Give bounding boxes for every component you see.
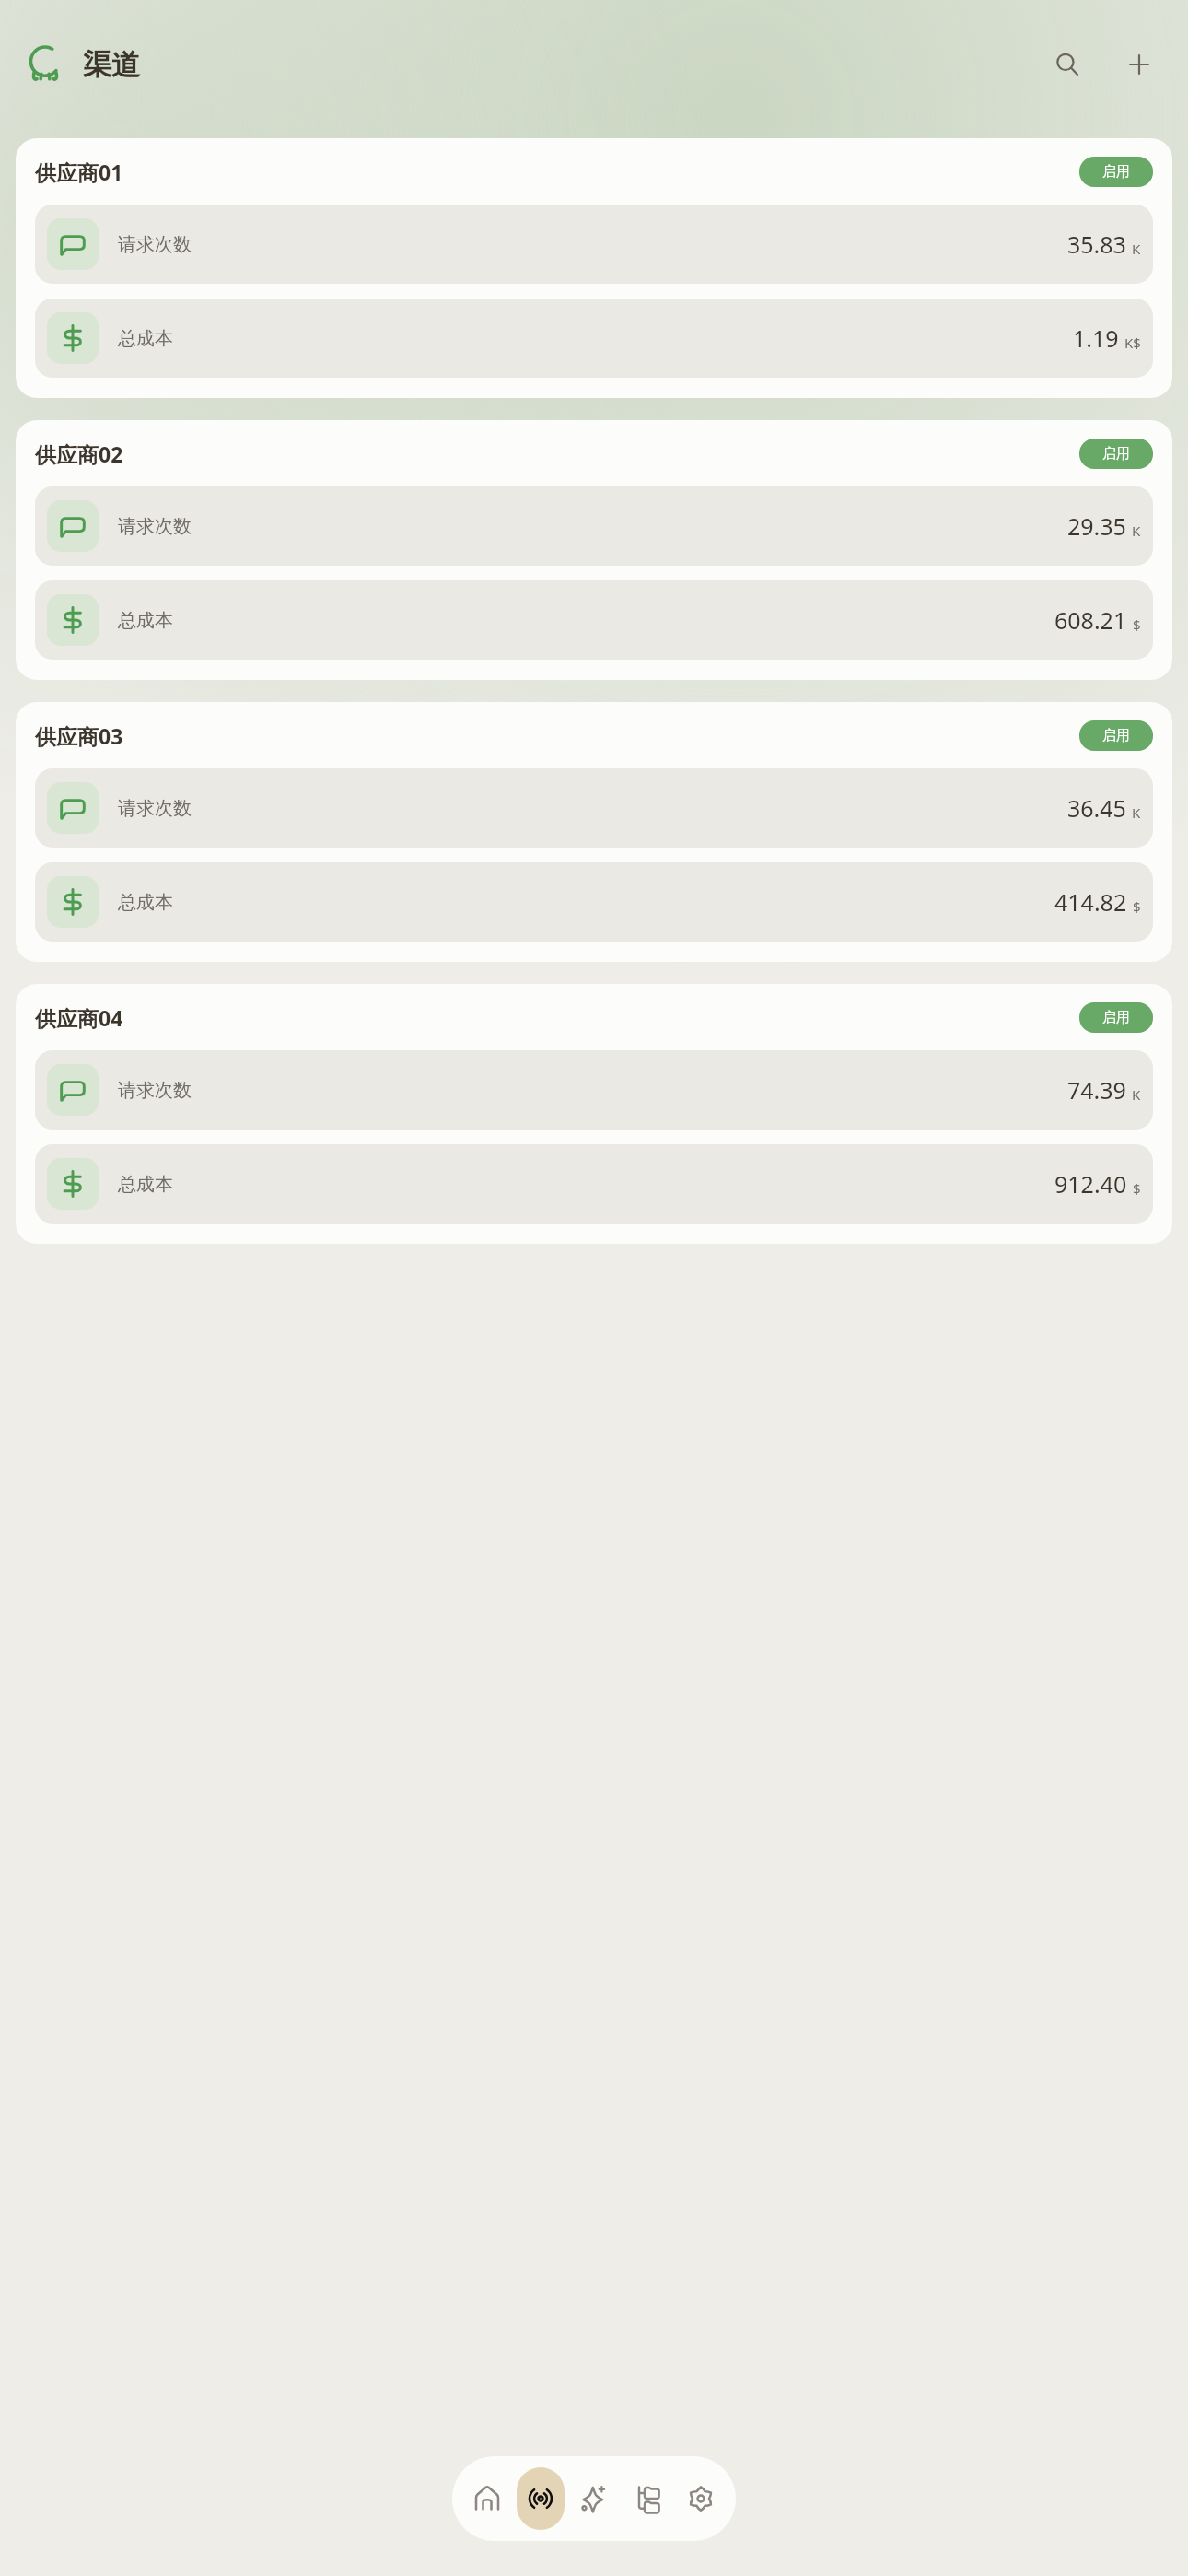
button[interactable]: 请求次数: [35, 1050, 1153, 1130]
staticText: $: [1133, 897, 1141, 916]
button[interactable]: 请求次数: [35, 768, 1153, 848]
button[interactable]: Settings: [674, 2465, 728, 2533]
button[interactable]: 供应商04: [16, 984, 1172, 1244]
button[interactable]: 总成本: [35, 299, 1153, 378]
staticText: 启用: [1102, 163, 1130, 181]
button[interactable]: 供应商03: [16, 702, 1172, 962]
staticText: 请求次数: [118, 1079, 192, 1102]
button[interactable]: Broadcast: [514, 2465, 567, 2533]
button[interactable]: 启用: [1079, 720, 1153, 751]
staticText: 74.39: [1067, 1074, 1126, 1106]
button[interactable]: 供应商01: [16, 138, 1172, 398]
button[interactable]: 请求次数: [35, 205, 1153, 284]
staticText: 启用: [1102, 445, 1130, 463]
staticText: K: [1132, 803, 1141, 822]
staticText: 请求次数: [118, 515, 192, 538]
staticText: 608.21: [1054, 604, 1127, 636]
staticText: 供应商03: [35, 721, 123, 750]
button[interactable]: Home: [460, 2465, 514, 2533]
button[interactable]: 启用: [1079, 439, 1153, 469]
staticText: 414.82: [1054, 886, 1127, 918]
staticText: K: [1132, 521, 1141, 540]
staticText: K: [1132, 240, 1141, 258]
staticText: 供应商04: [35, 1003, 123, 1032]
staticText: 供应商01: [35, 158, 123, 186]
button[interactable]: Files: [621, 2465, 674, 2533]
staticText: $: [1133, 1179, 1141, 1198]
button[interactable]: 请求次数: [35, 486, 1153, 566]
staticText: 29.35: [1067, 510, 1126, 542]
staticText: K$: [1124, 334, 1141, 352]
button[interactable]: 总成本: [35, 1144, 1153, 1224]
button[interactable]: Magic: [567, 2465, 621, 2533]
staticText: 总成本: [118, 327, 173, 350]
button[interactable]: 启用: [1079, 157, 1153, 187]
staticText: K: [1132, 1085, 1141, 1104]
staticText: 供应商02: [35, 439, 123, 468]
staticText: 912.40: [1054, 1168, 1127, 1200]
button[interactable]: 总成本: [35, 862, 1153, 942]
staticText: 35.83: [1067, 228, 1126, 260]
button[interactable]: Search: [1044, 41, 1090, 88]
staticText: 启用: [1102, 727, 1130, 744]
staticText: 总成本: [118, 609, 173, 632]
staticText: $: [1133, 615, 1141, 634]
staticText: 启用: [1102, 1009, 1130, 1026]
staticText: 36.45: [1067, 792, 1126, 824]
staticText: 1.19: [1073, 322, 1119, 354]
button[interactable]: 启用: [1079, 1002, 1153, 1033]
staticText: 总成本: [118, 1173, 173, 1196]
staticText: 请求次数: [118, 233, 192, 256]
button[interactable]: Add: [1116, 41, 1162, 88]
button[interactable]: 供应商02: [16, 420, 1172, 680]
staticText: 总成本: [118, 891, 173, 914]
staticText: 渠道: [83, 47, 140, 83]
staticText: 请求次数: [118, 797, 192, 820]
button[interactable]: 总成本: [35, 580, 1153, 660]
